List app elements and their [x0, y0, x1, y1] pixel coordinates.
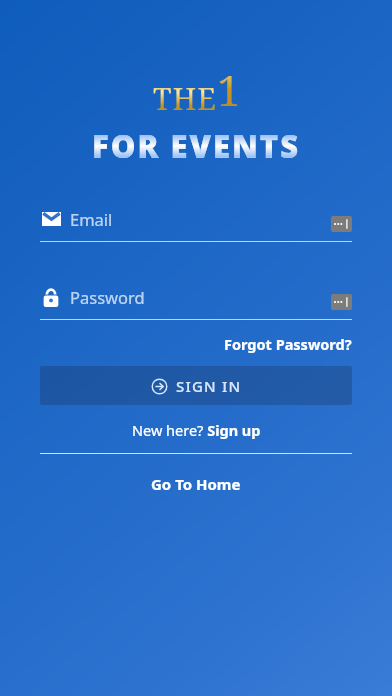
staticText: SIGN IN: [176, 376, 242, 396]
staticText: Go To Home: [151, 474, 241, 494]
staticText: 1: [217, 61, 241, 118]
staticText: FOR EVENTS: [92, 125, 301, 167]
button[interactable]: Forgot Password?: [224, 330, 352, 358]
button[interactable]: Sign in: [40, 366, 352, 405]
staticText: New here? Sign up: [132, 420, 261, 440]
staticText: FOR EVENTS: [92, 125, 301, 167]
button[interactable]: New here? Sign up: [126, 415, 267, 445]
button[interactable]: Autofill Email: [331, 216, 352, 232]
button[interactable]: Autofill Password: [331, 294, 352, 310]
button[interactable]: Email: [40, 208, 352, 242]
staticText: THE: [153, 78, 217, 119]
other: Sign in: [151, 378, 168, 395]
staticText: Forgot Password?: [224, 334, 352, 354]
staticText: Password: [70, 286, 145, 308]
other: Email: [42, 212, 61, 226]
other: Password: [43, 288, 59, 307]
button[interactable]: Password: [40, 286, 352, 320]
button[interactable]: Go To Home: [143, 470, 249, 498]
staticText: Email: [70, 208, 113, 230]
